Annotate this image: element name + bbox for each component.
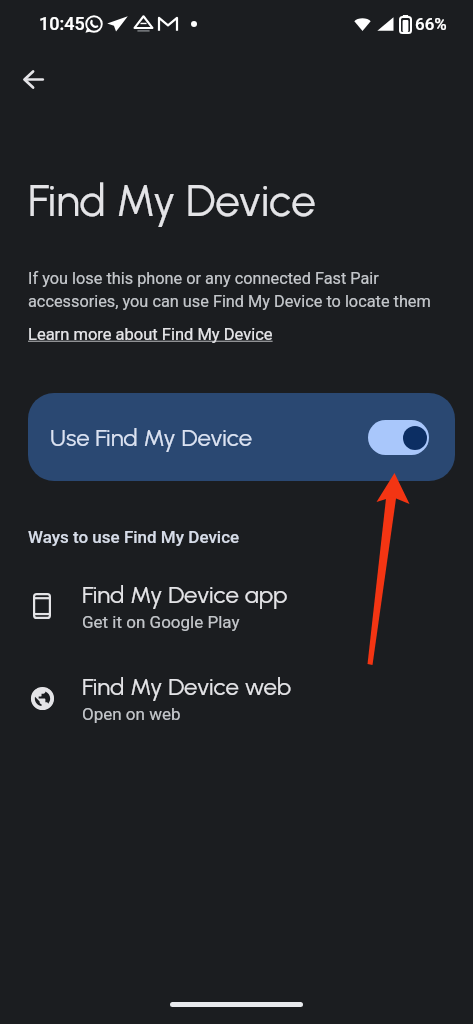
button[interactable]: Use Find My Device — [368, 420, 429, 455]
staticText: Open on web — [82, 704, 181, 724]
button[interactable]: Use Find My Device — [28, 393, 455, 481]
button[interactable]: Back — [9, 55, 57, 103]
staticText: Use Find My Device — [50, 423, 253, 452]
staticText: Find My Device web — [82, 672, 292, 701]
staticText: Find My Device app — [82, 580, 288, 609]
staticText: Ways to use Find My Device — [28, 527, 240, 547]
button[interactable]: Find My Device app — [0, 569, 473, 643]
staticText: 10:45 — [39, 13, 85, 34]
button[interactable]: Find My Device web — [0, 661, 473, 735]
staticText: Get it on Google Play — [82, 612, 240, 632]
staticText: Learn more about Find My Device — [28, 325, 273, 344]
button[interactable]: Learn more about Find My Device — [28, 325, 273, 344]
staticText: If you lose this phone or any connected … — [28, 269, 431, 311]
staticText: Find My Device — [28, 174, 316, 227]
staticText: 66% — [415, 14, 447, 34]
